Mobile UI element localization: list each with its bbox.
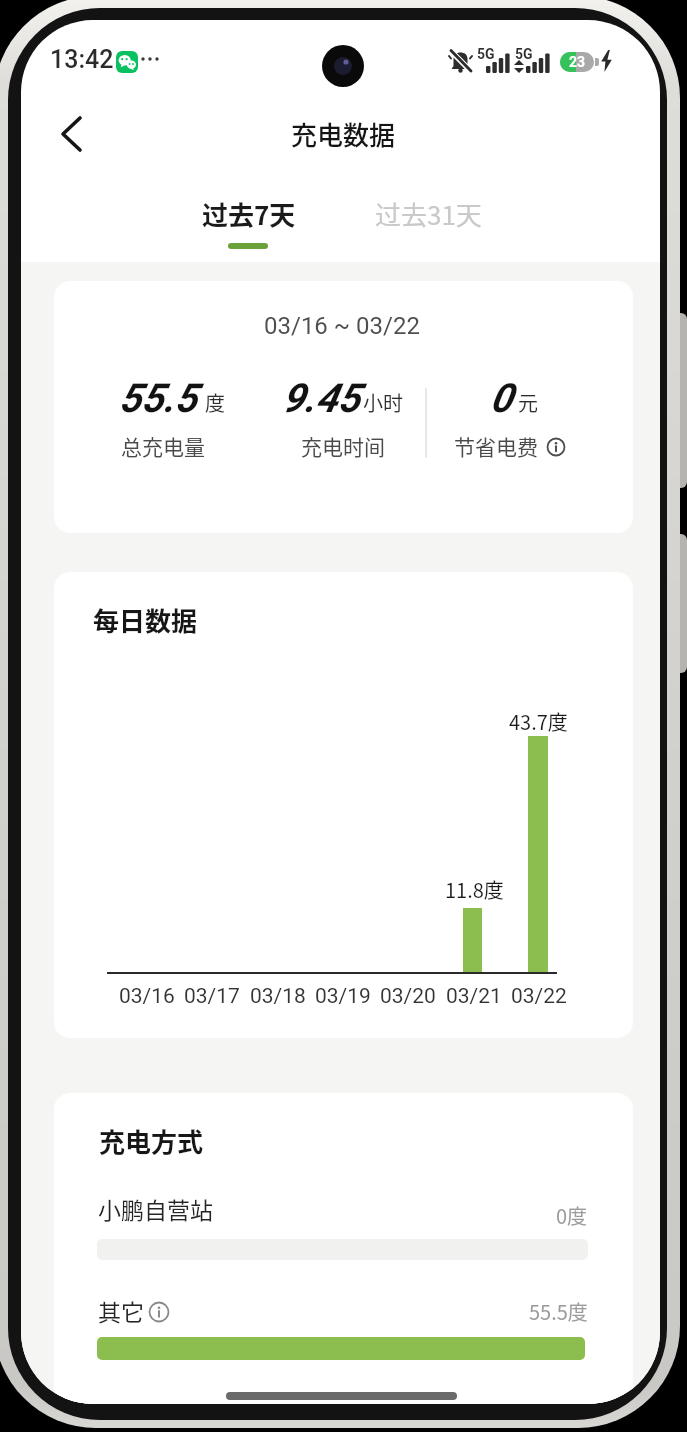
staticText: 充电方式 xyxy=(99,1122,204,1160)
staticText: 充电数据 xyxy=(291,115,396,153)
staticText: 55.5度 xyxy=(529,1297,588,1326)
staticText: 23 xyxy=(569,54,586,70)
button[interactable] xyxy=(148,1301,170,1323)
staticText: 过去7天 xyxy=(202,195,296,233)
staticText: 03/16 ~ 03/22 xyxy=(264,312,420,340)
staticText: 03/19 xyxy=(315,984,371,1009)
staticText: 55.5 xyxy=(119,375,198,422)
staticText: 0度 xyxy=(556,1201,588,1230)
staticText: 充电时间 xyxy=(301,431,385,461)
staticText: 5G xyxy=(515,46,533,62)
staticText: 13:42 xyxy=(50,45,114,74)
staticText: 03/20 xyxy=(380,984,436,1009)
button[interactable] xyxy=(546,437,566,457)
button[interactable] xyxy=(186,185,316,255)
staticText: 小鹏自营站 xyxy=(98,1192,213,1225)
staticText: 每日数据 xyxy=(93,601,198,639)
staticText: 其它 xyxy=(98,1294,144,1327)
staticText: 小时 xyxy=(363,388,403,417)
staticText: 03/22 xyxy=(511,984,567,1009)
staticText: 43.7度 xyxy=(509,707,568,736)
staticText: 11.8度 xyxy=(445,875,504,904)
button[interactable] xyxy=(51,112,95,156)
staticText: 9.45 xyxy=(282,375,361,422)
staticText: 03/17 xyxy=(184,984,240,1009)
staticText: 03/21 xyxy=(446,984,502,1009)
staticText: 过去31天 xyxy=(375,195,482,233)
staticText: 总充电量 xyxy=(121,431,205,461)
staticText: 度 xyxy=(205,388,225,417)
button[interactable] xyxy=(361,185,491,255)
staticText: 03/16 xyxy=(119,984,175,1009)
staticText: 5G xyxy=(477,46,495,62)
staticText: 03/18 xyxy=(250,984,306,1009)
staticText: 节省电费 xyxy=(454,431,538,461)
staticText: 0 xyxy=(490,375,513,422)
staticText: 元 xyxy=(518,388,538,417)
